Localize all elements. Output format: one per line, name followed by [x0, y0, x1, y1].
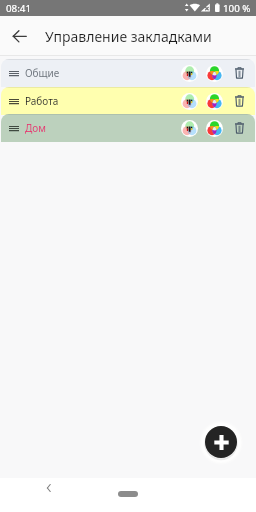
button[interactable]: Text colour [179, 87, 200, 115]
button[interactable]: Background colour [204, 87, 225, 115]
button[interactable]: Работа [1, 87, 255, 115]
button[interactable]: Add bookmark [205, 426, 237, 458]
button[interactable]: Background colour [204, 114, 225, 142]
button[interactable]: Back [0, 16, 40, 56]
button[interactable]: Delete [229, 87, 250, 115]
button[interactable]: Background colour [204, 59, 225, 87]
button[interactable]: Delete [229, 114, 250, 142]
staticText: Дом [25, 121, 46, 135]
button[interactable]: Text colour [179, 59, 200, 87]
staticText: 100 % [223, 2, 251, 15]
button[interactable]: Text colour [179, 114, 200, 142]
button[interactable]: Дом [1, 114, 255, 142]
button[interactable]: Back [39, 478, 59, 498]
button[interactable]: Delete [229, 59, 250, 87]
button[interactable]: Home [118, 491, 138, 497]
staticText: Работа [25, 94, 59, 108]
staticText: Общие [25, 66, 60, 80]
staticText: 08:41 [6, 2, 32, 15]
button[interactable]: Общие [1, 59, 255, 87]
staticText: Управление закладками [45, 27, 212, 46]
